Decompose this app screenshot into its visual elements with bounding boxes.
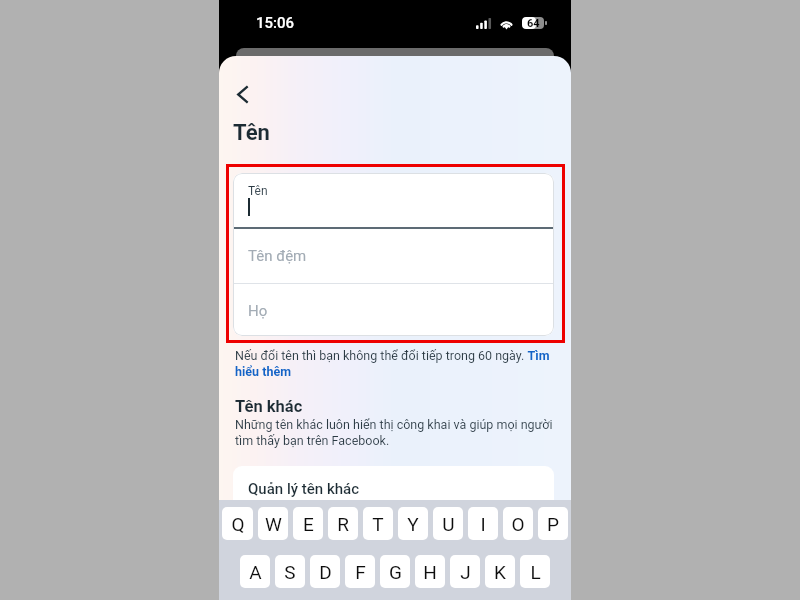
staticText: 64 [527, 17, 540, 29]
staticText: O [511, 513, 525, 535]
staticText: S [284, 561, 296, 583]
staticText: P [547, 513, 559, 535]
staticText: I [480, 513, 486, 535]
staticText: R [337, 513, 349, 535]
staticText: U [442, 513, 455, 535]
staticText: J [460, 561, 471, 583]
button[interactable]: P [538, 507, 568, 540]
staticText: E [303, 513, 314, 535]
staticText: Tên khác [235, 397, 303, 416]
button[interactable]: Back [220, 72, 264, 116]
button[interactable]: Quản lý tên khác [233, 466, 554, 528]
staticText: Những tên khác luôn hiển thị công khai v… [235, 417, 553, 448]
staticText: H [423, 561, 437, 583]
button[interactable]: F [345, 555, 375, 588]
button[interactable]: A [240, 555, 270, 588]
staticText: F [355, 561, 366, 583]
button[interactable]: H [415, 555, 445, 588]
staticText: Quản lý tên khác [248, 480, 360, 498]
staticText: L [530, 561, 541, 583]
button[interactable]: Y [398, 507, 428, 540]
button[interactable]: Tên [233, 173, 554, 227]
staticText: Q [231, 513, 245, 535]
staticText: Tên [248, 184, 268, 198]
staticText: Y [407, 513, 419, 535]
button[interactable]: K [485, 555, 515, 588]
button[interactable]: R [328, 507, 358, 540]
button[interactable]: E [293, 507, 323, 540]
button[interactable]: Q [222, 507, 253, 540]
staticText: W [265, 513, 282, 535]
staticText: Tên đệm [248, 247, 307, 265]
button[interactable]: G [380, 555, 410, 588]
button[interactable]: I [468, 507, 498, 540]
button[interactable]: D [310, 555, 340, 588]
staticText: Họ [248, 302, 268, 320]
button[interactable]: U [433, 507, 463, 540]
staticText: G [389, 561, 402, 583]
staticText: Tên [233, 120, 270, 146]
button[interactable]: Tên đệm [233, 229, 554, 283]
staticText: D [319, 561, 332, 583]
staticText: 15:06 [256, 14, 295, 32]
button[interactable]: Họ [233, 284, 554, 336]
button[interactable]: S [275, 555, 305, 588]
staticText: Nếu đổi tên thì bạn không thể đổi tiếp t… [235, 348, 553, 379]
staticText: K [494, 561, 506, 583]
button[interactable]: W [258, 507, 288, 540]
staticText: T [372, 513, 384, 535]
button[interactable]: J [450, 555, 480, 588]
button[interactable]: L [520, 555, 550, 588]
button[interactable]: T [363, 507, 393, 540]
button[interactable]: O [503, 507, 533, 540]
staticText: A [249, 561, 262, 583]
